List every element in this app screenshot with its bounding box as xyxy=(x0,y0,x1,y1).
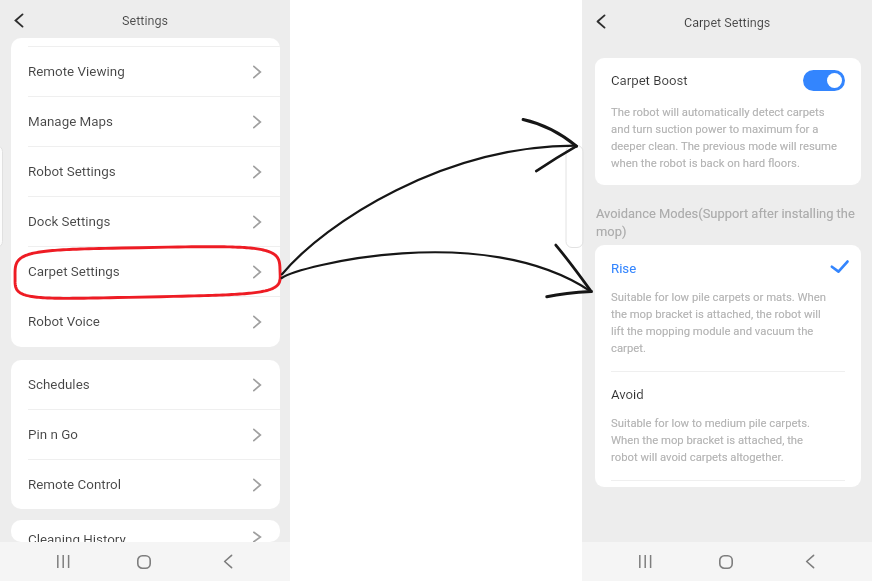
staticText: The robot will automatically detect carp… xyxy=(611,106,841,170)
button[interactable]: Home xyxy=(114,542,174,581)
staticText: Robot Settings xyxy=(28,164,116,180)
button[interactable]: Manage Maps xyxy=(11,97,280,146)
staticText: Remote Control xyxy=(28,477,121,493)
button[interactable]: Schedules xyxy=(11,360,280,409)
button[interactable]: Home xyxy=(696,542,756,581)
staticText: Robot Voice xyxy=(28,314,100,330)
button[interactable]: Remote Control xyxy=(11,460,280,509)
staticText: Remote Viewing xyxy=(28,64,125,80)
staticText: Suitable for low pile carpets or mats. W… xyxy=(611,291,828,355)
button[interactable]: Carpet Boost toggle xyxy=(803,70,845,91)
staticText: Carpet Settings xyxy=(28,264,120,280)
button[interactable]: Back xyxy=(198,542,258,581)
staticText: Carpet Boost xyxy=(611,73,688,88)
staticText: Schedules xyxy=(28,377,90,393)
button[interactable]: Avoid xyxy=(595,372,861,480)
button[interactable]: Remote Viewing xyxy=(11,47,280,96)
button[interactable]: Cleaning History xyxy=(11,532,280,542)
button[interactable]: Robot Settings xyxy=(11,147,280,196)
button[interactable]: Navigate up xyxy=(5,7,32,34)
staticText: Pin n Go xyxy=(28,427,78,443)
staticText: Dock Settings xyxy=(28,214,111,230)
staticText: Rise xyxy=(611,261,637,276)
staticText: Manage Maps xyxy=(28,114,113,130)
button[interactable]: Carpet Settings xyxy=(11,247,280,296)
button[interactable]: Back xyxy=(780,542,840,581)
button[interactable]: Dock Settings xyxy=(11,197,280,246)
button[interactable]: Recent apps xyxy=(33,542,93,581)
button[interactable]: Pin n Go xyxy=(11,410,280,459)
staticText: Suitable for low to medium pile carpets.… xyxy=(611,417,828,464)
button[interactable]: Navigate up xyxy=(587,8,614,35)
button[interactable]: Recent apps xyxy=(615,542,675,581)
button[interactable]: Robot Voice xyxy=(11,297,280,347)
button[interactable]: Rise xyxy=(595,245,861,371)
staticText: Avoidance Modes(Support after installing… xyxy=(596,206,861,239)
staticText: Avoid xyxy=(611,387,644,402)
staticText: Cleaning History xyxy=(28,532,126,542)
staticText: Settings xyxy=(122,13,168,28)
staticText: Carpet Settings xyxy=(684,15,771,30)
